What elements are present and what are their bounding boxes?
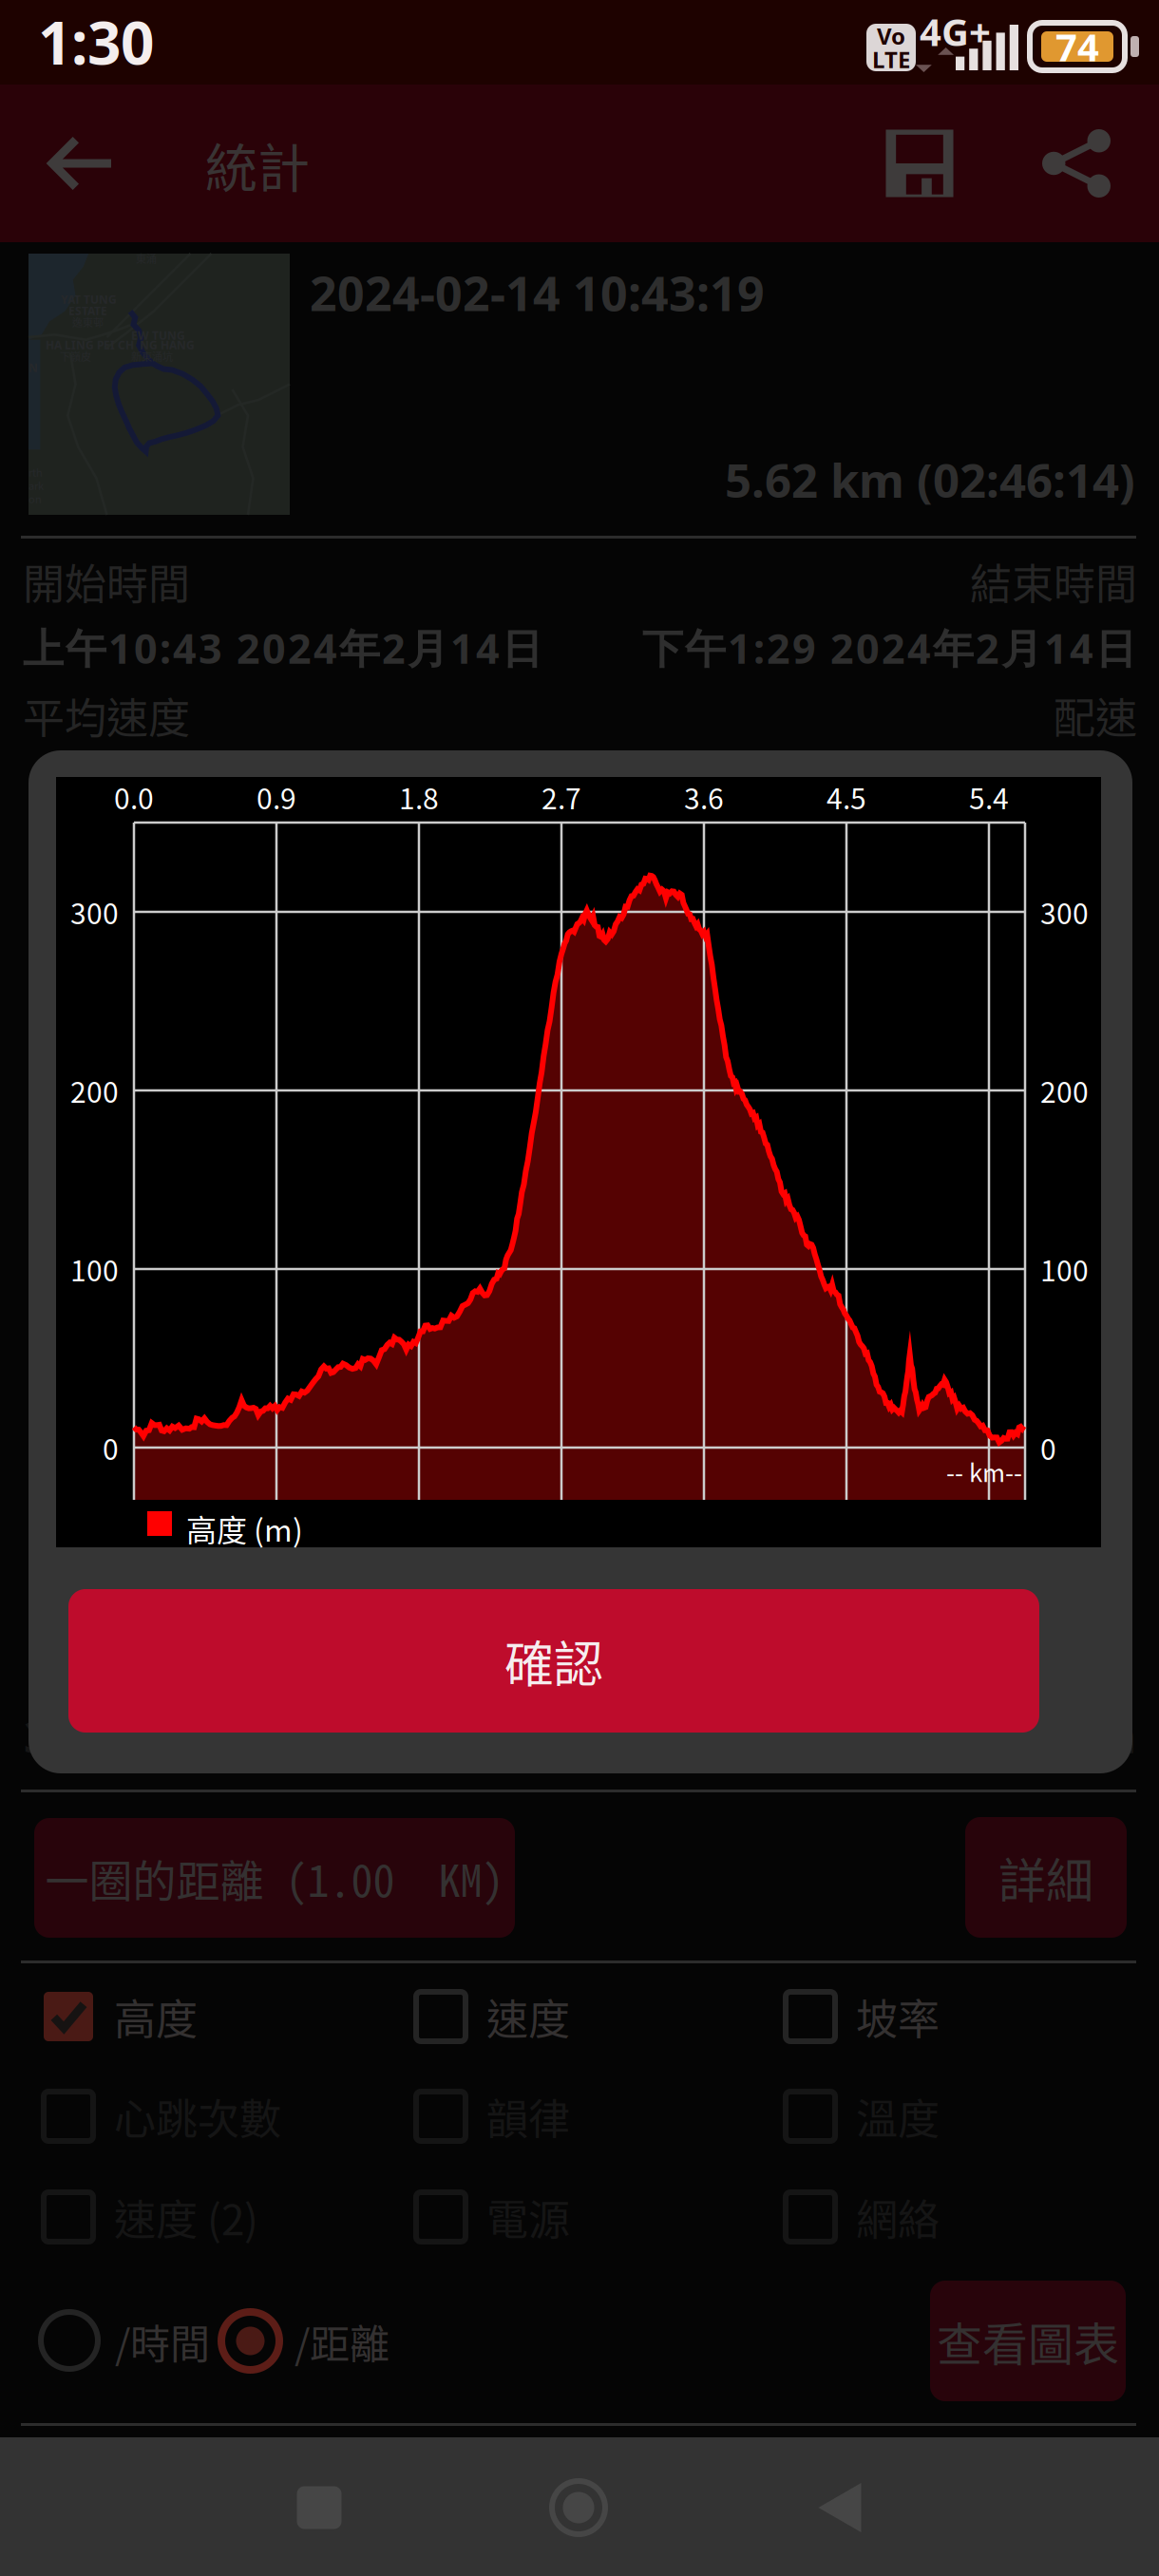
button[interactable]: Share xyxy=(0,0,104,104)
staticText: 東涌 xyxy=(136,251,157,266)
staticText: YAT TUNG xyxy=(61,291,117,307)
staticText: 下嶺皮 xyxy=(60,349,91,364)
button[interactable]: 查看圖表 xyxy=(0,0,196,121)
staticText: 200 xyxy=(1040,1070,1089,1111)
staticText: 200 xyxy=(70,1070,119,1111)
button[interactable]: Back xyxy=(0,0,91,91)
staticText: 新東涌坑 xyxy=(131,349,173,364)
staticText: 5.62 km (02:46:14) xyxy=(725,448,1135,511)
staticText: 韻律 xyxy=(486,2086,570,2146)
staticText: rth xyxy=(28,464,43,480)
button[interactable]: 速度 xyxy=(0,0,346,55)
staticText: 配速 xyxy=(1054,685,1137,745)
button[interactable]: 高度 xyxy=(0,0,346,55)
button[interactable]: 坡率 xyxy=(0,0,346,55)
button[interactable]: 韻律 xyxy=(0,0,346,55)
staticText: 坡率 xyxy=(856,1986,940,2047)
staticText: 下午1:29 2024年2月14日 xyxy=(642,620,1136,676)
staticText: 3.25 m xyxy=(24,1707,164,1766)
staticText: 300 xyxy=(70,891,119,933)
button[interactable]: 一圈的距離 (1.00 KM) xyxy=(0,0,481,120)
staticText: on xyxy=(28,491,42,506)
staticText: 心跳次數 xyxy=(114,2086,281,2146)
staticText: CH NG HANG xyxy=(118,337,195,352)
staticText: 4G+ xyxy=(920,6,991,57)
staticText: 100 xyxy=(70,1248,119,1290)
button[interactable]: 溫度 xyxy=(0,0,346,55)
button[interactable]: /距離 xyxy=(0,0,209,76)
staticText: /距離 xyxy=(294,2313,389,2370)
button[interactable]: 電源 xyxy=(0,0,346,55)
staticText: 18:27 min xyxy=(929,1707,1136,1766)
staticText: 3.6 xyxy=(684,776,724,818)
staticText: 100 xyxy=(1040,1248,1089,1290)
button[interactable]: 速度 (2) xyxy=(0,0,346,55)
button[interactable]: Back xyxy=(0,0,114,104)
staticText: 逸東邨 xyxy=(72,314,104,330)
staticText: 速度 (2) xyxy=(114,2187,258,2247)
button[interactable]: Save xyxy=(0,0,104,104)
staticText: 速度 xyxy=(486,1986,570,2047)
staticText: 74 xyxy=(1055,21,1099,72)
staticText: Vo xyxy=(877,20,905,51)
staticText: 高度 (m) xyxy=(186,1506,303,1550)
staticText: 5.4 xyxy=(969,776,1009,818)
staticText: 開始時間 xyxy=(23,551,190,612)
button[interactable]: 網絡 xyxy=(0,0,346,55)
staticText: 結束時間 xyxy=(970,551,1137,612)
staticText: 0.0 xyxy=(114,776,154,818)
staticText: 上午10:43 2024年2月14日 xyxy=(23,620,542,676)
staticText: ESTATE xyxy=(68,303,107,318)
button[interactable]: 心跳次數 xyxy=(0,0,346,55)
staticText: 300 xyxy=(1040,891,1089,933)
staticText: 統計 xyxy=(205,127,310,202)
staticText: 查看圖表 xyxy=(937,2308,1119,2374)
staticText: 2.7 xyxy=(541,776,581,818)
button[interactable]: Recent apps xyxy=(0,0,91,91)
staticText: HA LING PEI xyxy=(46,337,115,352)
staticText: 詳細 xyxy=(998,1843,1093,1912)
staticText: 電源 xyxy=(486,2187,570,2247)
staticText: 1.8 xyxy=(399,776,439,818)
staticText: 一圈的距離 (1.00 KM) xyxy=(45,1846,504,1909)
staticText: 網絡 xyxy=(856,2187,940,2247)
staticText: 平均速度 xyxy=(23,685,190,745)
staticText: -- km-- xyxy=(946,1453,1022,1489)
staticText: 0 xyxy=(103,1427,119,1468)
staticText: 溫度 xyxy=(856,2086,940,2146)
button[interactable]: 確認 xyxy=(0,0,971,143)
staticText: 0 xyxy=(1040,1427,1056,1468)
staticText: 1:30 xyxy=(38,2,154,82)
staticText: /時間 xyxy=(115,2313,210,2370)
staticText: N xyxy=(28,360,38,375)
button[interactable]: /時間 xyxy=(0,0,209,76)
staticText: 確認 xyxy=(504,1625,603,1697)
button[interactable]: Home xyxy=(0,0,91,91)
staticText: 2024-02-14 10:43:19 xyxy=(310,260,765,325)
staticText: ark xyxy=(28,478,44,493)
staticText: 4.5 xyxy=(826,776,866,818)
button[interactable]: 詳細 xyxy=(0,0,161,121)
staticText: EW TUNG xyxy=(131,328,185,343)
staticText: 高度 xyxy=(114,1986,198,2047)
staticText: LTE xyxy=(872,44,910,75)
staticText: 0.9 xyxy=(256,776,296,818)
